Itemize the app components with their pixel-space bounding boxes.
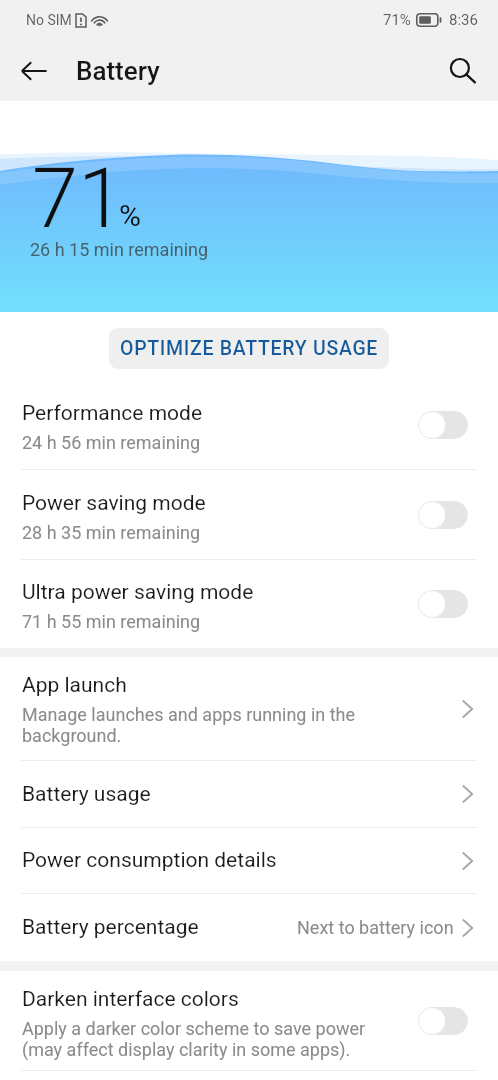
staticText: Battery	[76, 56, 160, 86]
staticText: %	[119, 198, 141, 233]
button[interactable]: Ultra power saving mode	[0, 560, 498, 648]
staticText: Apply a darker color scheme to save powe…	[22, 1018, 366, 1061]
button[interactable]: Toggle	[418, 411, 468, 439]
staticText: 71%	[383, 11, 411, 29]
button[interactable]: Power saving mode	[0, 470, 498, 559]
staticText: Ultra power saving mode	[22, 580, 254, 605]
staticText: Manage launches and apps running in the …	[22, 704, 356, 747]
button[interactable]: Toggle	[418, 590, 468, 618]
button[interactable]: App launch	[0, 657, 498, 760]
staticText: No SIM	[26, 12, 72, 28]
staticText: Power saving mode	[22, 491, 206, 516]
button[interactable]: Toggle	[418, 1007, 468, 1035]
button[interactable]: Power consumption details	[0, 828, 498, 893]
button[interactable]: Toggle	[418, 501, 468, 529]
staticText: 71	[32, 150, 125, 247]
staticText: App launch	[22, 673, 127, 698]
button[interactable]: Search	[436, 45, 488, 97]
button[interactable]: Darken interface colors	[0, 971, 498, 1070]
staticText: Performance mode	[22, 401, 203, 426]
button[interactable]: Battery percentage	[0, 894, 498, 961]
staticText: 71 h 55 min remaining	[22, 611, 201, 632]
button[interactable]: OPTIMIZE BATTERY USAGE	[109, 328, 389, 369]
staticText: OPTIMIZE BATTERY USAGE	[120, 337, 379, 360]
staticText: Next to battery icon	[297, 917, 454, 938]
staticText: 28 h 35 min remaining	[22, 522, 201, 543]
button[interactable]: Battery usage	[0, 761, 498, 827]
staticText: Battery usage	[22, 782, 151, 807]
staticText: Darken interface colors	[22, 987, 239, 1012]
staticText: 8:36	[449, 11, 478, 29]
staticText: 24 h 56 min remaining	[22, 432, 201, 453]
staticText: 26 h 15 min remaining	[30, 239, 209, 260]
staticText: Battery percentage	[22, 915, 199, 940]
staticText: Power consumption details	[22, 848, 277, 873]
button[interactable]: Back	[8, 45, 60, 97]
button[interactable]: Performance mode	[0, 381, 498, 469]
